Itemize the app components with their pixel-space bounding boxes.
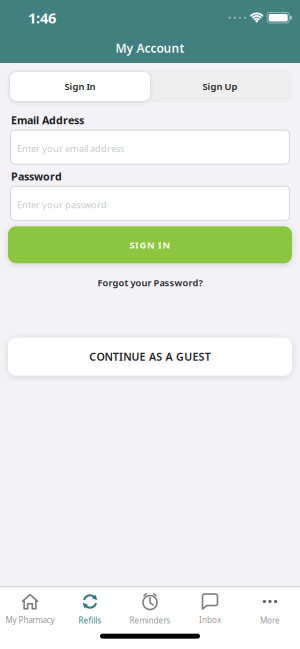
staticText: More [260,615,280,626]
staticText: Enter your email address [17,142,124,155]
button[interactable]: More [240,593,300,626]
button[interactable]: My Pharmacy [0,593,60,625]
staticText: Refills [78,615,101,626]
staticText: My Account [115,40,184,56]
staticText: Sign Up [202,80,237,93]
staticText: SIGN IN [129,239,170,251]
button[interactable]: Email Address [0,130,300,164]
staticText: Reminders [129,615,170,626]
button[interactable]: Forgot your Password? [97,276,202,289]
button[interactable]: Sign In [10,72,150,101]
staticText: Inbox [199,614,221,625]
staticText: My Pharmacy [5,614,54,625]
button[interactable]: Reminders [120,593,180,626]
staticText: 1:46 [28,8,56,27]
staticText: Password [11,169,62,183]
staticText: CONTINUE AS A GUEST [89,350,211,364]
button[interactable]: Refills [60,593,120,626]
staticText: Sign In [64,80,95,93]
staticText: Enter your password [17,198,107,211]
button[interactable]: Inbox [180,593,240,625]
button[interactable]: Password [0,186,300,220]
button[interactable]: Sign Up [150,72,290,101]
staticText: Forgot your Password? [97,276,202,289]
button[interactable]: SIGN IN [0,226,300,263]
button[interactable]: CONTINUE AS A GUEST [0,338,300,376]
staticText: Email Address [11,113,84,127]
